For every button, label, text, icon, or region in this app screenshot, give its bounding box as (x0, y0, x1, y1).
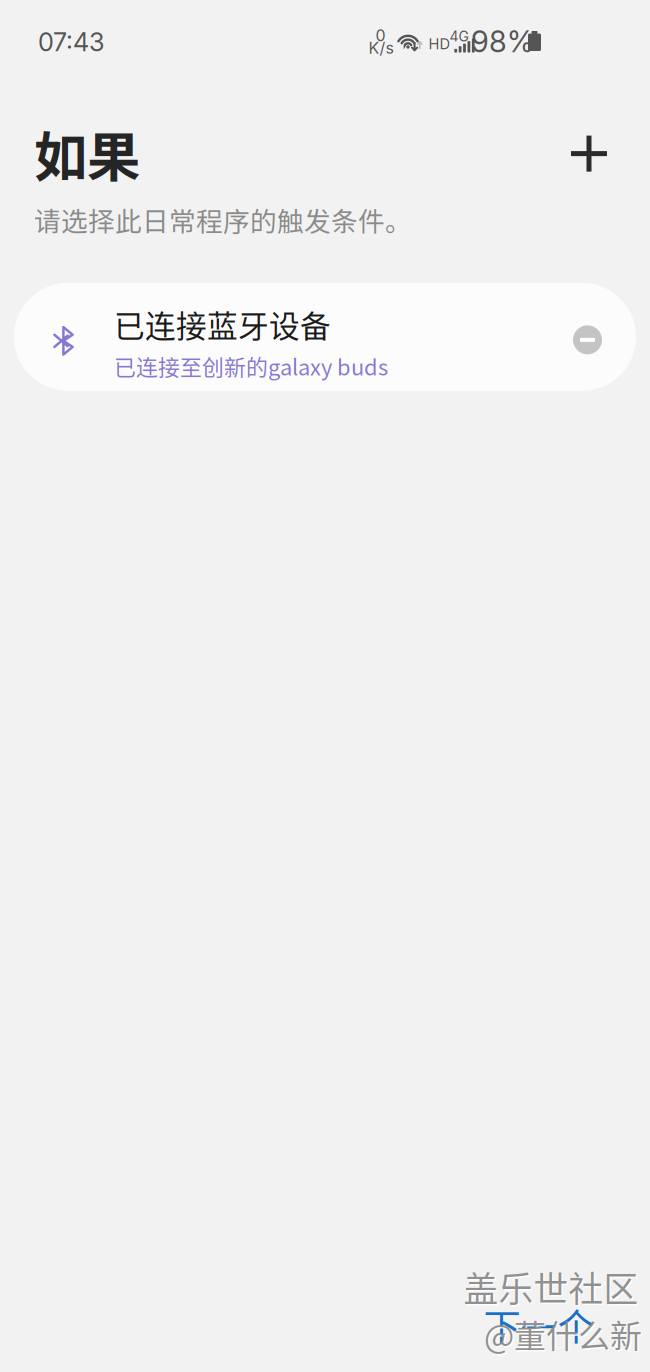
button[interactable]: 已连接蓝牙设备 (14, 283, 636, 391)
staticText: HD (428, 35, 450, 53)
staticText: 已连接至创新的galaxy buds (114, 350, 388, 382)
button[interactable]: 添加 (559, 124, 619, 184)
staticText: 如果 (34, 115, 140, 192)
staticText: 07:43 (38, 27, 105, 57)
staticText: 98% (471, 24, 534, 59)
staticText: K/s (368, 38, 393, 58)
staticText: 4G (449, 28, 468, 45)
staticText: 下一个 (483, 1298, 594, 1352)
staticText: 盖乐世社区 (465, 1263, 640, 1314)
staticText: @董什么新 (484, 1311, 642, 1357)
staticText: 请选择此日常程序的触发条件。 (34, 200, 412, 239)
staticText: 已连接蓝牙设备 (114, 302, 331, 346)
staticText: 0 (375, 26, 385, 45)
staticText: @董什么新 (485, 1312, 643, 1359)
staticText: 盖乐世社区 (463, 1262, 638, 1312)
